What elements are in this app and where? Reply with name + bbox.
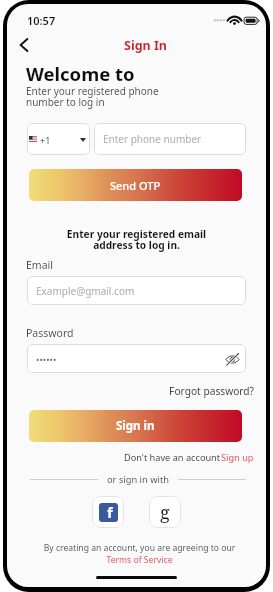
staticText: f bbox=[107, 503, 113, 521]
staticText: Enter your registered email address to l… bbox=[27, 227, 246, 252]
button[interactable]: +1 bbox=[27, 123, 90, 155]
staticText: Don't have an account bbox=[124, 451, 221, 464]
button[interactable]: Example@gmail.com bbox=[27, 276, 246, 305]
button[interactable]: Back bbox=[13, 34, 35, 56]
button[interactable]: Forgot password? bbox=[27, 384, 254, 398]
button[interactable]: Sign in bbox=[29, 410, 242, 442]
staticText: Enter phone number bbox=[103, 132, 202, 146]
button[interactable]: •••••• bbox=[27, 344, 246, 373]
staticText: Sign in bbox=[116, 418, 155, 434]
staticText: Send OTP bbox=[110, 178, 161, 193]
staticText: or sign in with bbox=[107, 473, 169, 485]
staticText: Email bbox=[26, 258, 53, 272]
button[interactable]: Send OTP bbox=[29, 169, 242, 201]
button[interactable]: Show password bbox=[224, 351, 240, 367]
staticText: •••••• bbox=[36, 353, 57, 365]
button[interactable]: Sign in with Facebook bbox=[92, 496, 124, 528]
staticText: g bbox=[160, 500, 170, 525]
staticText: By creating an account, you are agreeing… bbox=[27, 542, 252, 565]
staticText: Enter your registered phone number to lo… bbox=[26, 84, 159, 109]
staticText: 10:57 bbox=[27, 13, 56, 28]
staticText: Welcome to bbox=[26, 61, 135, 86]
staticText: Password bbox=[26, 326, 74, 340]
button[interactable]: Enter phone number bbox=[94, 123, 246, 155]
button[interactable]: Sign up bbox=[221, 451, 254, 464]
button[interactable]: Sign in with Google bbox=[149, 496, 181, 528]
staticText: Sign In bbox=[124, 37, 167, 54]
staticText: Example@gmail.com bbox=[36, 284, 135, 298]
staticText: +1 bbox=[40, 134, 51, 146]
